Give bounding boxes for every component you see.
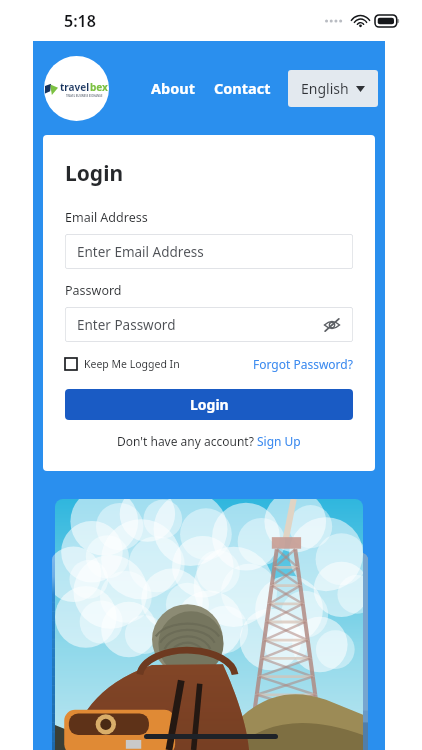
staticText: TRAVEL BUSINESS EXCHANGE	[66, 94, 103, 98]
button[interactable]: Contact	[209, 69, 276, 107]
staticText: About	[151, 78, 195, 98]
staticText: Forgot Password?	[253, 356, 353, 372]
staticText: Enter Email Address	[77, 243, 204, 261]
staticText: travel	[60, 80, 90, 94]
button[interactable]: City street photo	[298, 553, 368, 750]
button[interactable]: Login	[65, 389, 353, 420]
button[interactable]: Enter Password	[65, 307, 353, 342]
button[interactable]: Travelbex home	[44, 56, 109, 121]
staticText: 5:18	[64, 10, 96, 32]
button[interactable]: Enter Email Address	[65, 234, 353, 269]
staticText: English	[301, 79, 349, 98]
button[interactable]: Keep Me Logged In	[65, 357, 180, 371]
button[interactable]: Sign Up	[257, 433, 301, 449]
staticText: Login	[190, 395, 229, 414]
button[interactable]: English	[288, 70, 378, 107]
staticText: Contact	[214, 78, 271, 98]
staticText: Sign Up	[257, 433, 301, 449]
staticText: Enter Password	[77, 316, 176, 334]
staticText: Don't have any account?	[117, 433, 257, 449]
button[interactable]: Ocean destination photo	[52, 553, 124, 750]
button[interactable]: About	[146, 69, 200, 107]
button[interactable]: Show password	[323, 318, 341, 332]
staticText: Password	[65, 282, 122, 299]
staticText: Login	[65, 159, 124, 188]
staticText: Email Address	[65, 209, 148, 226]
staticText: bex	[90, 80, 108, 94]
staticText: Keep Me Logged In	[84, 357, 180, 371]
button[interactable]: Forgot Password?	[253, 356, 353, 372]
button[interactable]: Backpacker travel photo	[55, 499, 363, 750]
